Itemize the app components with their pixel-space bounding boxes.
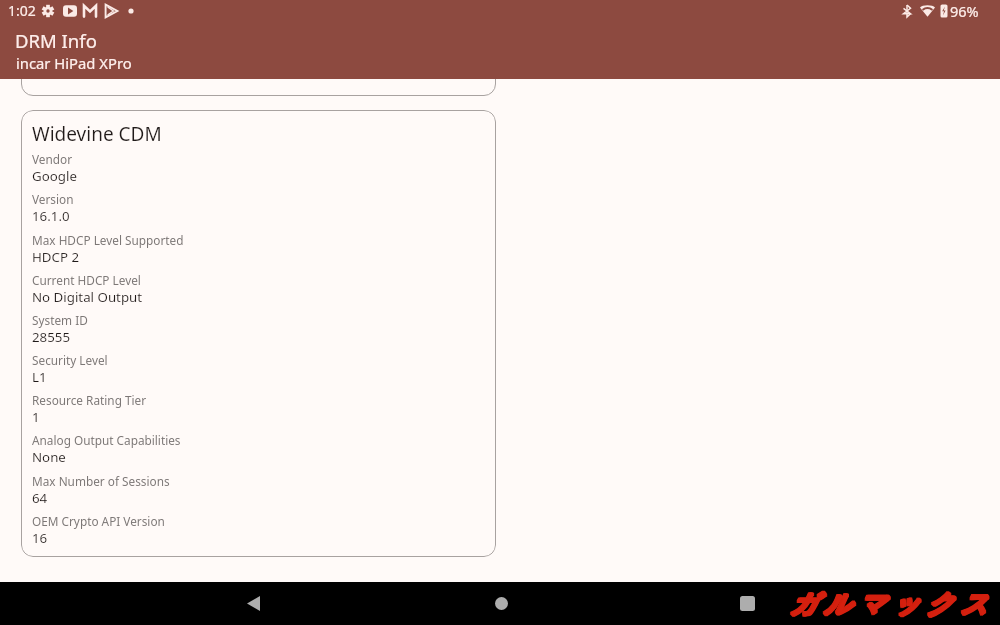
button[interactable]: Home: [476, 582, 524, 625]
staticText: 64: [32, 489, 48, 507]
staticText: Widevine CDM: [32, 121, 162, 147]
staticText: Google: [32, 167, 77, 185]
staticText: None: [32, 448, 66, 466]
staticText: ガルマックス: [789, 588, 994, 621]
staticText: ガルマックス: [789, 589, 994, 622]
staticText: Max HDCP Level Supported: [32, 232, 184, 248]
button[interactable]: Recents: [723, 582, 771, 625]
staticText: DRM Info: [15, 28, 97, 53]
staticText: OEM Crypto API Version: [32, 513, 165, 529]
staticText: Vendor: [32, 151, 73, 167]
staticText: L1: [32, 368, 47, 386]
staticText: ガルマックス: [791, 587, 996, 620]
staticText: 16.1.0: [32, 207, 70, 225]
staticText: HDCP 2: [32, 248, 80, 266]
staticText: ガルマックス: [791, 589, 996, 622]
staticText: ガルマックス: [790, 588, 995, 621]
staticText: No Digital Output: [32, 288, 143, 306]
staticText: Version: [32, 191, 74, 207]
button[interactable]: Widevine CDM: [21, 110, 496, 557]
staticText: System ID: [32, 312, 88, 328]
staticText: Security Level: [32, 352, 108, 368]
staticText: 96%: [950, 1, 979, 21]
staticText: Analog Output Capabilities: [32, 432, 181, 448]
staticText: ガルマックス: [790, 589, 995, 622]
staticText: Max Number of Sessions: [32, 473, 170, 489]
staticText: 28555: [32, 328, 71, 346]
staticText: incar HiPad XPro: [16, 53, 132, 73]
staticText: ガルマックス: [790, 587, 995, 620]
staticText: 16: [32, 529, 48, 547]
staticText: ガルマックス: [789, 587, 994, 620]
staticText: 1: [32, 408, 40, 426]
staticText: Resource Rating Tier: [32, 392, 147, 408]
staticText: Current HDCP Level: [32, 272, 141, 288]
button[interactable]: Back: [229, 582, 277, 625]
staticText: 1:02: [8, 1, 36, 20]
staticText: ガルマックス: [791, 588, 996, 621]
